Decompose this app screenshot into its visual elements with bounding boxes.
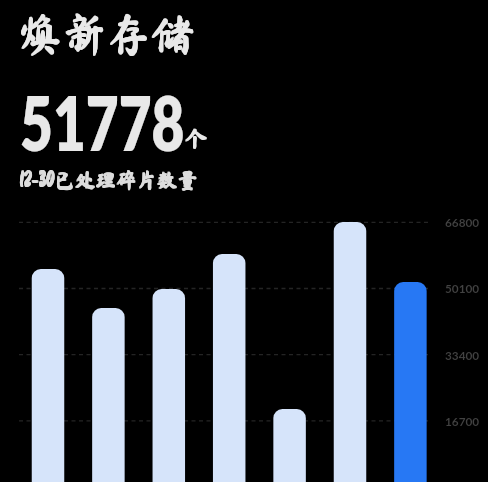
staticText: 12-30已处理碎片数量	[19, 170, 198, 190]
staticText: 50100	[445, 281, 480, 295]
staticText: 12-30已处理碎片数量	[20, 169, 199, 189]
staticText: 焕新存储	[18, 11, 194, 55]
staticText: 焕新存储	[19, 12, 195, 56]
staticText: 焕新存储	[19, 11, 195, 55]
staticText: 个	[185, 128, 207, 150]
staticText: 51778	[20, 77, 185, 167]
staticText: 个	[186, 127, 208, 149]
staticText: 12-30已处理碎片数量	[20, 170, 199, 190]
staticText: 焕新存储	[18, 12, 194, 56]
staticText: 个	[186, 128, 208, 150]
staticText: 16700	[445, 414, 480, 428]
staticText: 个	[185, 127, 207, 149]
staticText: 33400	[445, 348, 480, 362]
staticText: 12-30已处理碎片数量	[19, 169, 198, 189]
staticText: 66800	[445, 215, 480, 229]
